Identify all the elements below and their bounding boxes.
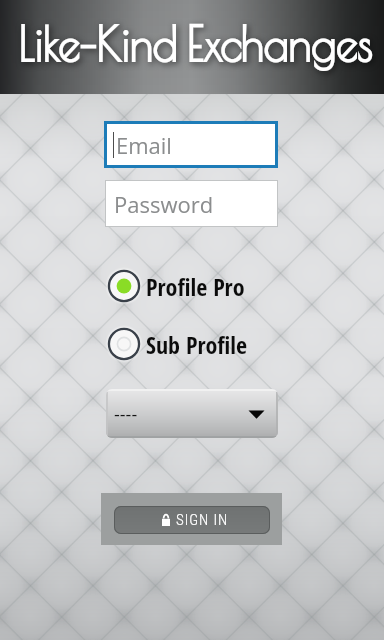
button[interactable]: Password [106,181,277,226]
staticText: ---- [114,402,138,427]
button[interactable]: Email [107,124,275,165]
staticText: SIGN IN [176,511,229,529]
staticText: Sub Profile [146,328,248,361]
button[interactable]: ---- [106,389,278,438]
staticText: Like-Kind Exchanges [18,16,372,72]
button[interactable]: Profile Pro [105,267,242,305]
button[interactable]: SIGN IN [114,506,270,534]
staticText: Profile Pro [146,270,245,303]
button[interactable]: Sub Profile [105,325,245,363]
staticText: Email [116,130,172,160]
staticText: Password [114,189,214,219]
